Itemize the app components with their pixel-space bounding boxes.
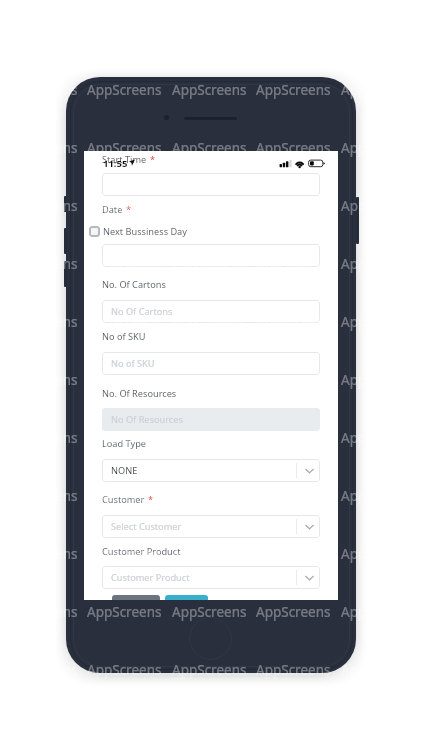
staticText: *: [126, 203, 131, 215]
staticText: AppScreens: [341, 661, 416, 679]
staticText: AppScreens: [87, 429, 162, 447]
button[interactable]: [102, 244, 320, 267]
button[interactable]: No Of Resources: [102, 408, 320, 431]
button[interactable]: Cancel: [112, 595, 160, 600]
staticText: AppScreens: [256, 603, 331, 621]
staticText: AppScreens: [3, 429, 78, 447]
staticText: AppScreens: [172, 603, 247, 621]
staticText: AppScreens: [256, 313, 331, 331]
staticText: No Of Resources: [111, 413, 183, 426]
staticText: AppScreens: [3, 255, 78, 273]
staticText: Customer Product: [111, 571, 190, 584]
button[interactable]: Customer Product: [102, 566, 320, 589]
staticText: AppScreens: [3, 139, 78, 157]
staticText: AppScreens: [341, 603, 416, 621]
staticText: AppScreens: [341, 255, 416, 273]
staticText: AppScreens: [341, 487, 416, 505]
staticText: 11:55: [103, 157, 128, 170]
staticText: AppScreens: [87, 197, 162, 215]
staticText: AppScreens: [3, 81, 78, 99]
staticText: AppScreens: [256, 81, 331, 99]
button[interactable]: Save: [165, 595, 208, 600]
button[interactable]: NONE: [102, 459, 320, 482]
staticText: AppScreens: [87, 371, 162, 389]
staticText: Customer Product: [102, 545, 181, 558]
staticText: NONE: [111, 464, 138, 477]
staticText: AppScreens: [87, 313, 162, 331]
staticText: AppScreens: [3, 371, 78, 389]
staticText: AppScreens: [256, 371, 331, 389]
staticText: AppScreens: [172, 313, 247, 331]
staticText: Next Bussiness Day: [103, 225, 187, 238]
button[interactable]: No Of Cartons: [102, 300, 320, 323]
staticText: AppScreens: [341, 197, 416, 215]
staticText: Start Time: [102, 153, 147, 166]
staticText: AppScreens: [172, 139, 247, 157]
staticText: AppScreens: [87, 661, 162, 679]
staticText: AppScreens: [3, 661, 78, 679]
staticText: No of SKU: [102, 330, 146, 343]
staticText: AppScreens: [87, 545, 162, 563]
staticText: Date: [102, 203, 123, 216]
staticText: AppScreens: [256, 255, 331, 273]
staticText: AppScreens: [341, 429, 416, 447]
staticText: Load Type: [102, 437, 147, 450]
staticText: *: [150, 153, 155, 165]
staticText: AppScreens: [256, 139, 331, 157]
staticText: AppScreens: [256, 429, 331, 447]
staticText: AppScreens: [3, 487, 78, 505]
staticText: AppScreens: [341, 545, 416, 563]
staticText: AppScreens: [3, 545, 78, 563]
staticText: No of SKU: [111, 357, 155, 370]
staticText: AppScreens: [172, 81, 247, 99]
staticText: AppScreens: [341, 371, 416, 389]
staticText: AppScreens: [3, 197, 78, 215]
staticText: AppScreens: [172, 371, 247, 389]
staticText: AppScreens: [87, 255, 162, 273]
staticText: AppScreens: [87, 603, 162, 621]
staticText: AppScreens: [172, 429, 247, 447]
staticText: AppScreens: [172, 255, 247, 273]
staticText: No Of Cartons: [111, 305, 173, 318]
staticText: AppScreens: [341, 139, 416, 157]
staticText: No. Of Resources: [102, 387, 177, 400]
staticText: *: [148, 493, 153, 505]
staticText: AppScreens: [87, 81, 162, 99]
staticText: AppScreens: [3, 313, 78, 331]
button[interactable]: Next Bussiness Day: [89, 225, 187, 238]
button[interactable]: No of SKU: [102, 352, 320, 375]
staticText: AppScreens: [87, 487, 162, 505]
staticText: AppScreens: [256, 661, 331, 679]
staticText: AppScreens: [3, 603, 78, 621]
staticText: AppScreens: [172, 545, 247, 563]
staticText: Select Customer: [111, 520, 182, 533]
staticText: Customer: [102, 493, 145, 506]
staticText: No. Of Cartons: [102, 278, 166, 291]
staticText: AppScreens: [341, 313, 416, 331]
staticText: AppScreens: [87, 139, 162, 157]
staticText: AppScreens: [341, 81, 416, 99]
button[interactable]: [102, 173, 320, 196]
staticText: AppScreens: [172, 661, 247, 679]
button[interactable]: Select Customer: [102, 515, 320, 538]
